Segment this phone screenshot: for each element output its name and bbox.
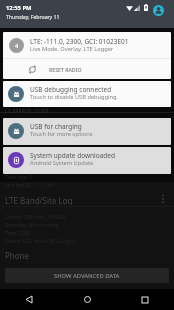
staticText: LTE Band/Site Log: [5, 195, 73, 205]
button[interactable]: User account: [153, 5, 164, 16]
button[interactable]: Recent apps: [116, 289, 174, 310]
staticText: Thursday, February 11: [6, 14, 60, 21]
button[interactable]: USB for charging: [3, 118, 171, 145]
staticText: Live Mode, Overlay, LTE Logger: [30, 45, 114, 53]
staticText: LG EARPCN: 20300: [5, 108, 49, 115]
button[interactable]: Back: [0, 289, 58, 310]
staticText: Type: GSM: [5, 230, 30, 237]
staticText: USB debugging connected: [30, 85, 112, 94]
button[interactable]: SHOW ADVANCED DATA: [5, 268, 169, 283]
staticText: System update downloaded: [30, 151, 115, 160]
staticText: 12:55 PM: [6, 4, 32, 12]
staticText: Carrier: T-Mobile (310260): [5, 214, 66, 221]
staticText: Device: LGE Nexus 5X (Google): [5, 238, 77, 245]
staticText: LTE: -111.0, 2300, GCI: 01023E01: [30, 37, 129, 46]
staticText: Last log: 02-11 12:36: [5, 182, 54, 189]
staticText: Roaming: Not roaming: [5, 222, 59, 229]
button[interactable]: RESET RADIO: [3, 59, 171, 79]
staticText: SHOW ADVANCED DATA: [54, 272, 120, 280]
button[interactable]: More options: [156, 192, 170, 206]
staticText: Total logs: 1: [5, 174, 33, 181]
staticText: Android System Update: [30, 159, 94, 167]
staticText: Touch to disable USB debugging.: [30, 93, 119, 101]
button[interactable]: 4: [3, 32, 171, 58]
staticText: Phone: [5, 250, 30, 260]
button[interactable]: USB debugging connected: [3, 81, 171, 107]
staticText: USB for charging: [30, 122, 82, 131]
staticText: Touch for more options: [30, 130, 93, 138]
button[interactable]: Home: [58, 289, 116, 310]
button[interactable]: System update downloaded: [3, 147, 171, 174]
staticText: 4: [15, 42, 19, 49]
staticText: RESET RADIO: [49, 66, 82, 73]
